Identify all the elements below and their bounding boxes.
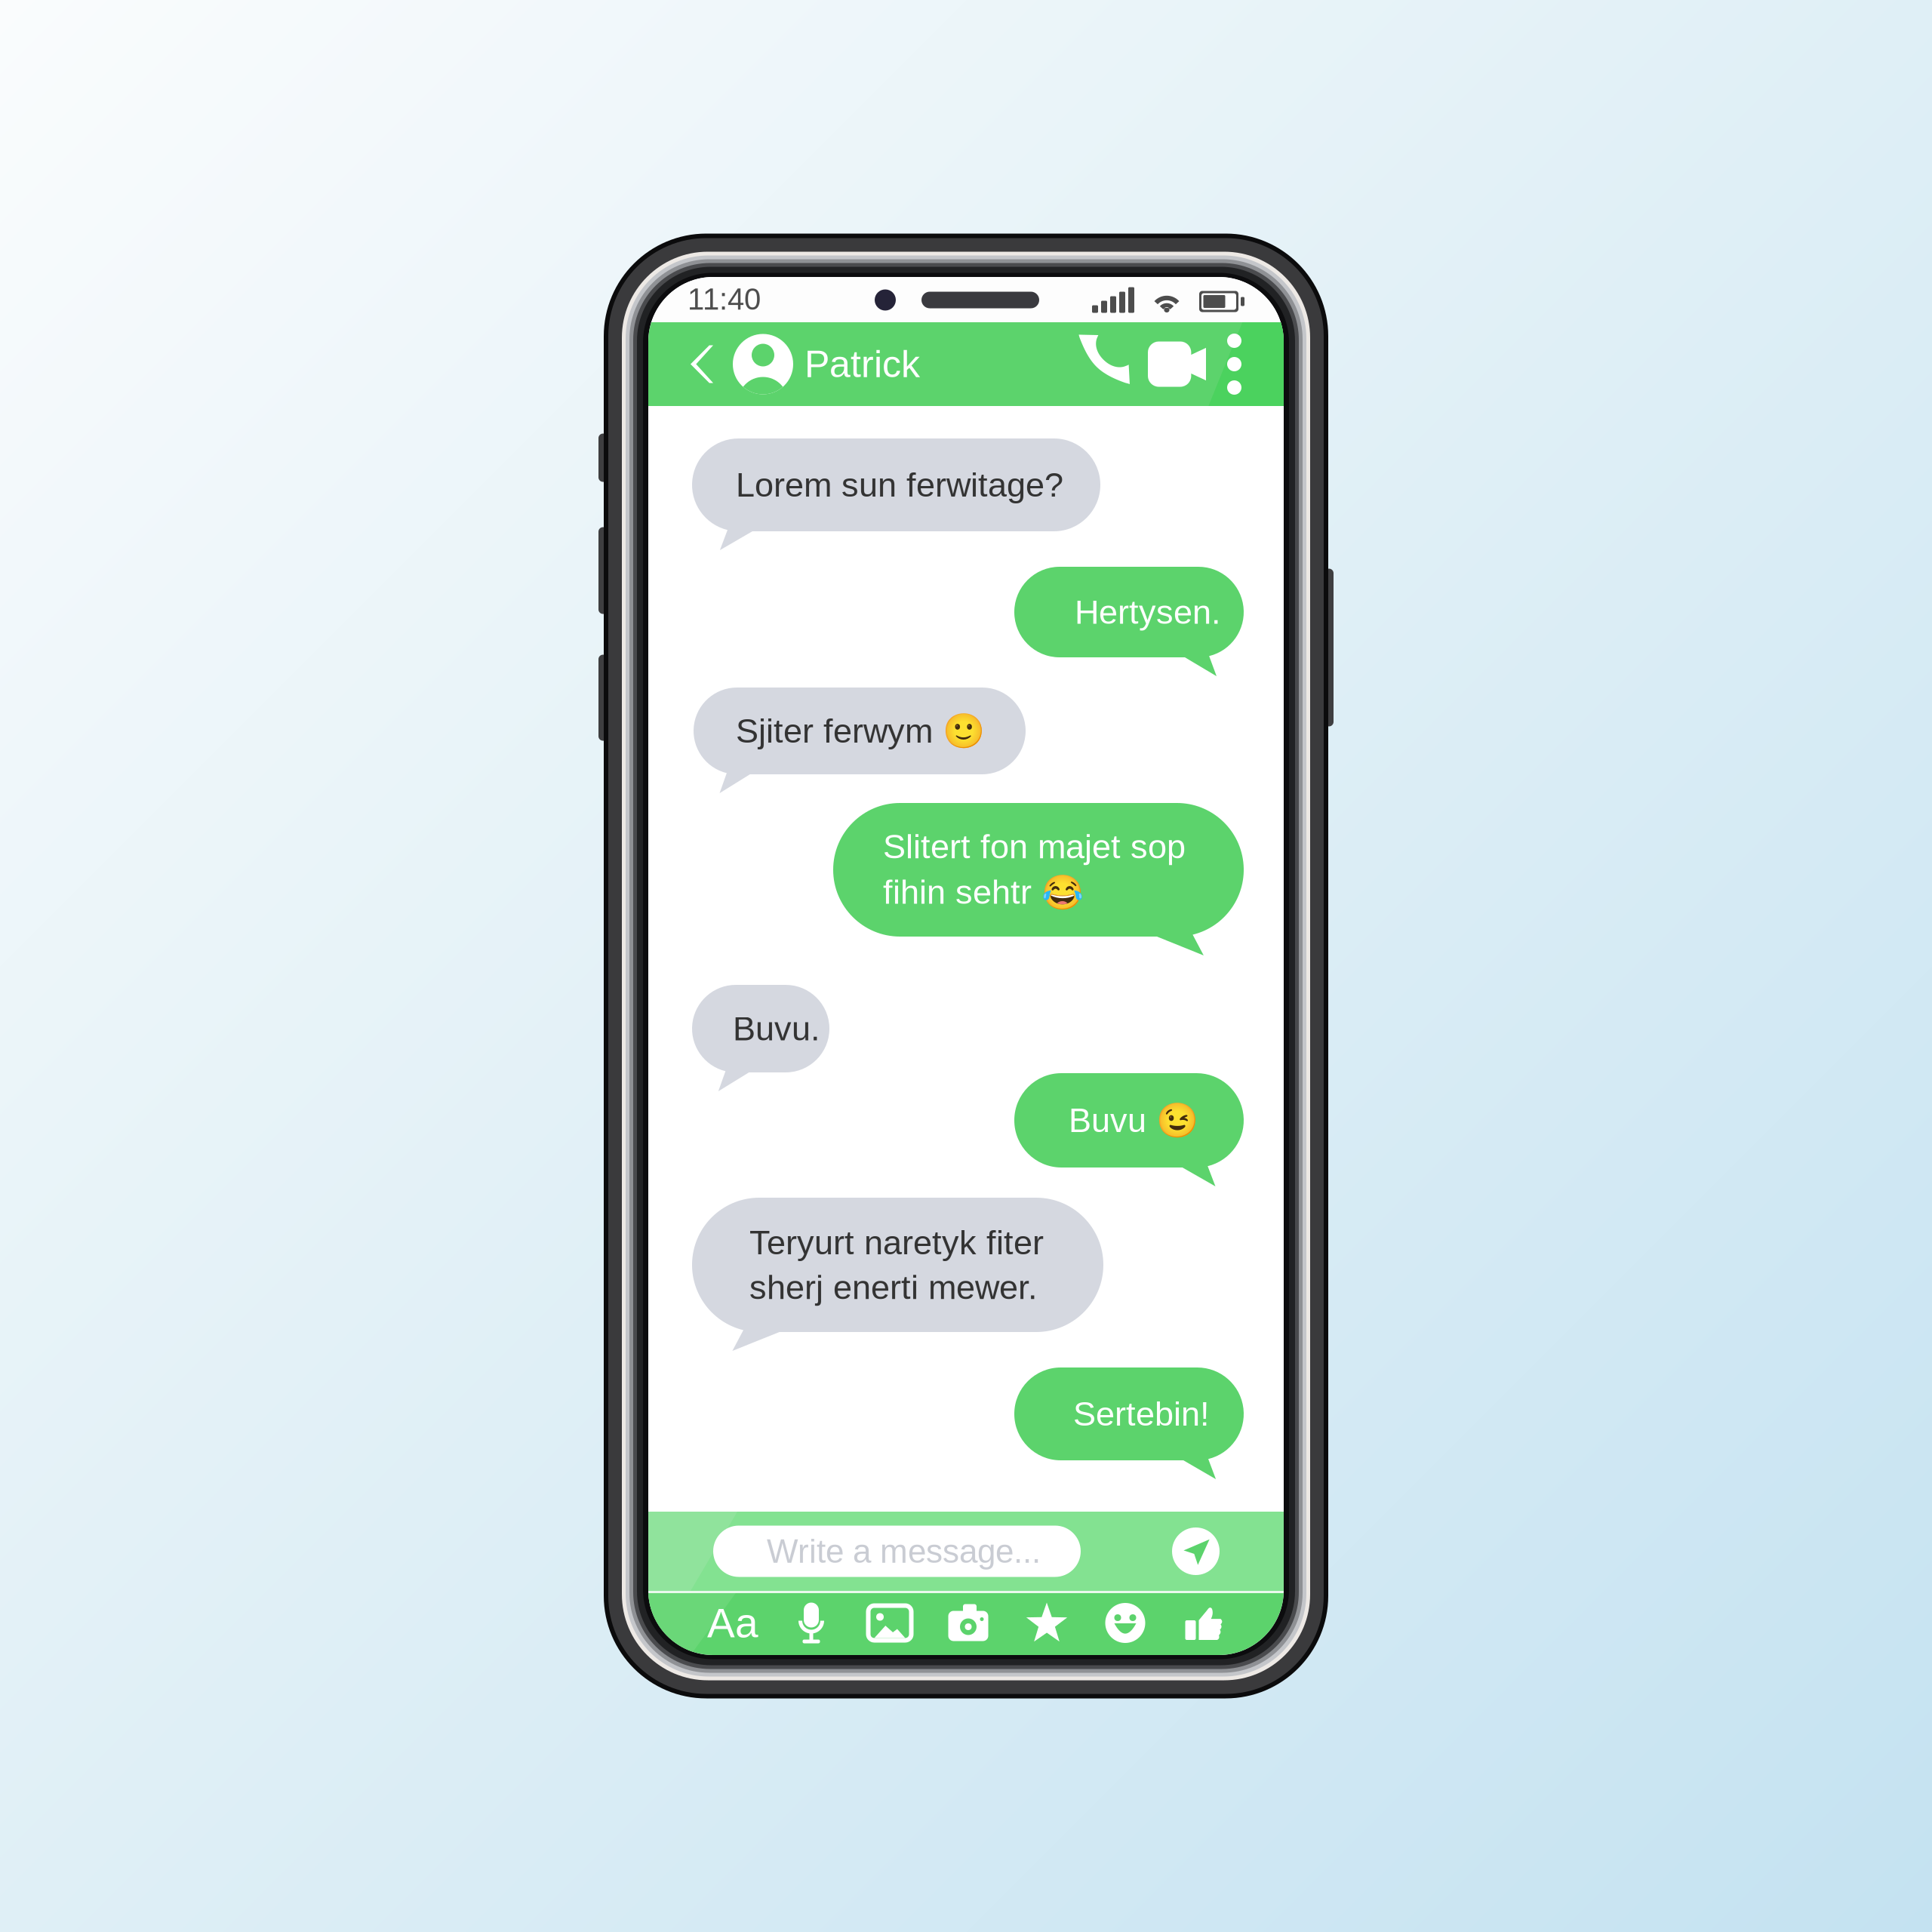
button[interactable]: Voice message — [772, 1591, 851, 1655]
button[interactable]: Send a like — [1164, 1591, 1243, 1655]
button[interactable]: More options — [1212, 321, 1257, 407]
button[interactable]: Write a message... — [713, 1526, 1081, 1577]
staticText: Buvu. — [733, 1010, 820, 1048]
button[interactable]: Send — [1169, 1524, 1223, 1578]
staticText: sherj enerti mewer. — [749, 1268, 1038, 1306]
button[interactable]: Favourites — [1008, 1591, 1086, 1655]
button[interactable]: Text formatting — [694, 1591, 772, 1655]
staticText: Slitert fon majet sop — [883, 828, 1186, 865]
button[interactable]: Back — [648, 323, 721, 406]
staticText: Hertysen. — [1075, 593, 1221, 631]
button[interactable]: Camera — [929, 1591, 1008, 1655]
button[interactable]: Video call — [1131, 323, 1211, 406]
button[interactable]: Voice call — [1059, 323, 1131, 406]
staticText: Teryurt naretyk fiter — [749, 1223, 1044, 1261]
staticText: fihin sehtr 😂 — [883, 872, 1084, 912]
staticText: Lorem sun ferwitage? — [736, 466, 1063, 504]
button[interactable]: Emoji — [1086, 1591, 1164, 1655]
staticText: Aa — [707, 1600, 758, 1646]
staticText: Write a message... — [767, 1533, 1041, 1570]
button[interactable]: Photo library — [851, 1591, 929, 1655]
staticText: Buvu 😉 — [1069, 1100, 1198, 1140]
button[interactable]: Contact profile photo — [721, 323, 804, 406]
staticText: 11:40 — [688, 282, 761, 316]
staticText: Sjiter ferwym 🙂 — [736, 711, 985, 751]
staticText: Patrick — [804, 343, 920, 385]
staticText: Sertebin! — [1073, 1395, 1210, 1433]
